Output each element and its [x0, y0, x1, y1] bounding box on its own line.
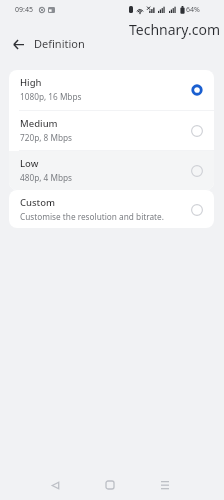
staticText: 09:45 [15, 5, 33, 15]
staticText: 64% [186, 5, 200, 15]
staticText: High [20, 76, 42, 89]
button[interactable]: Recent apps [151, 471, 179, 499]
staticText: Customise the resolution and bitrate. [20, 211, 164, 222]
staticText: 720p, 8 Mbps [20, 132, 73, 143]
staticText: Low [20, 157, 39, 170]
button[interactable]: Custom [9, 190, 214, 228]
staticText: Technary.com [129, 20, 220, 39]
button[interactable]: Medium [9, 111, 214, 150]
staticText: Custom [20, 196, 56, 209]
button[interactable]: Back [3, 29, 33, 59]
button[interactable]: Low [9, 151, 214, 190]
button[interactable]: Home [96, 471, 124, 499]
button[interactable]: Back [41, 471, 69, 499]
button[interactable]: High [9, 70, 214, 110]
staticText: Definition [34, 36, 85, 51]
staticText: Medium [20, 117, 58, 130]
staticText: 480p, 4 Mbps [20, 172, 73, 183]
staticText: 1080p, 16 Mbps [20, 91, 82, 102]
